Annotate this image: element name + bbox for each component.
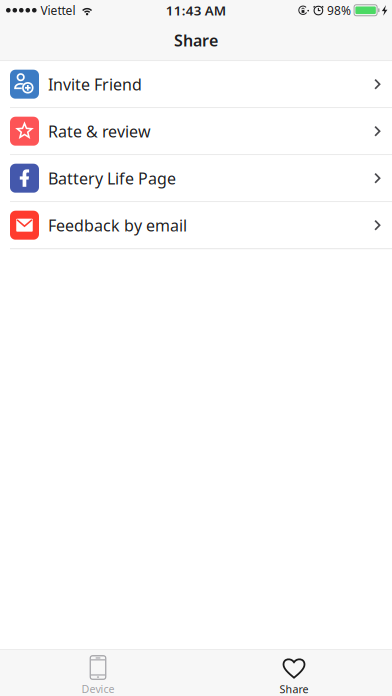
staticText: Device <box>81 682 114 696</box>
staticText: 98% <box>327 2 351 18</box>
button[interactable]: Share <box>196 650 392 696</box>
staticText: 11:43 AM <box>166 1 226 19</box>
staticText: Invite Friend <box>48 74 142 95</box>
button[interactable]: Invite Friend <box>0 61 392 108</box>
staticText: Share <box>279 682 308 696</box>
staticText: Viettel <box>41 2 76 18</box>
staticText: Share <box>174 30 218 51</box>
button[interactable]: Device <box>0 650 196 696</box>
button[interactable]: Feedback by email <box>0 202 392 249</box>
button[interactable]: Rate & review <box>0 108 392 155</box>
staticText: Rate & review <box>48 121 151 142</box>
staticText: Feedback by email <box>48 215 187 236</box>
button[interactable]: Battery Life Page <box>0 155 392 202</box>
staticText: Battery Life Page <box>48 168 176 189</box>
